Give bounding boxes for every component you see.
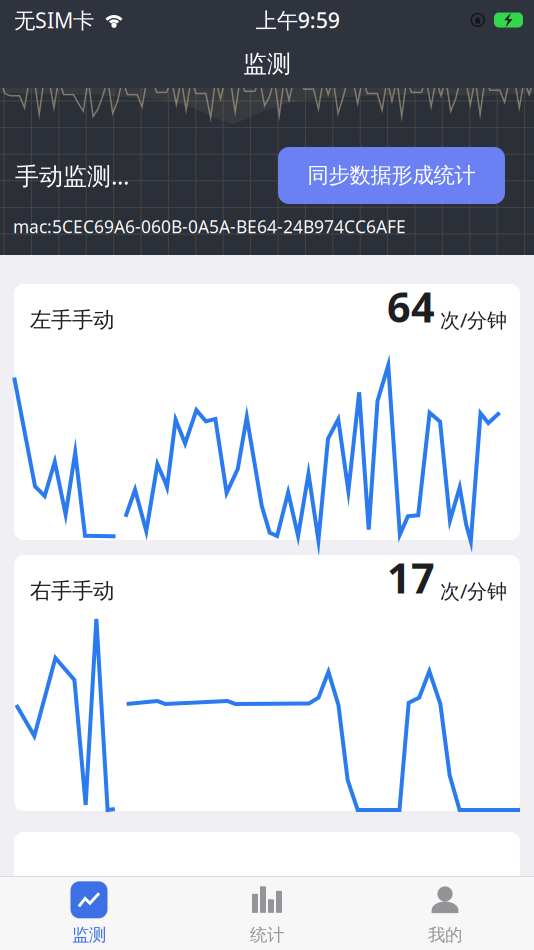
staticText: 17 [387, 550, 435, 605]
staticText: 我的 [428, 924, 462, 946]
button[interactable]: 统计 [178, 877, 356, 950]
button[interactable]: 同步数据形成统计 [278, 147, 505, 204]
button[interactable]: 监测 [0, 877, 178, 950]
staticText: 上午9:59 [256, 6, 340, 34]
staticText: 统计 [250, 924, 284, 946]
staticText: 次/分钟 [440, 577, 507, 604]
staticText: 64 [387, 279, 435, 334]
button[interactable]: 我的 [356, 877, 534, 950]
staticText: mac:5CEC69A6-060B-0A5A-BE64-24B974CC6AFE [13, 215, 406, 238]
staticText: 次/分钟 [440, 306, 507, 333]
staticText: 左手手动 [30, 307, 114, 333]
staticText: 手动监测... [15, 159, 129, 191]
staticText: 监测 [243, 49, 291, 79]
staticText: 右手手动 [30, 578, 114, 604]
staticText: 同步数据形成统计 [307, 162, 475, 189]
staticText: 无SIM卡 [14, 6, 94, 34]
staticText: 监测 [72, 924, 106, 946]
